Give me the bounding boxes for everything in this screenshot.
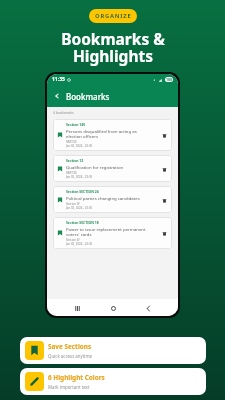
button[interactable]: Section SECTION 18	[53, 217, 172, 249]
button[interactable]: Back	[142, 302, 154, 314]
button[interactable]: 6 Highlight Colors	[20, 368, 206, 395]
staticText: Section IV	[66, 202, 80, 206]
staticText: 4 bookmarks	[53, 110, 74, 115]
staticText: Section SECTION 24	[66, 189, 99, 194]
button[interactable]: Recents	[71, 302, 83, 314]
staticText: Quick access anytime	[48, 353, 93, 359]
staticText: PART III	[66, 171, 77, 175]
button[interactable]: Delete	[160, 131, 168, 139]
staticText: Section 145	[66, 122, 86, 127]
staticText: 11:35	[52, 76, 65, 83]
staticText: Section SECTION 18	[66, 220, 99, 225]
staticText: Jan 02, 2024 - 23:35	[66, 206, 93, 210]
button[interactable]: Delete	[160, 229, 168, 237]
staticText: Persons disqualified from acting as elec…	[66, 128, 137, 139]
button[interactable]: Save Sections	[20, 337, 206, 364]
button[interactable]: Delete	[160, 196, 168, 204]
staticText: Section 12	[66, 158, 84, 163]
staticText: ORGANIZE	[95, 12, 132, 20]
staticText: 100	[166, 77, 173, 82]
staticText: Jan 02, 2024 - 23:35	[66, 175, 93, 179]
staticText: PART III	[66, 140, 77, 144]
staticText: Political parties changing candidates	[66, 195, 140, 201]
button[interactable]: Section 12	[53, 155, 172, 182]
staticText: Qualification for registration	[66, 164, 124, 170]
staticText: Bookmarks & Highlights	[61, 28, 165, 67]
staticText: Jan 02, 2024 - 23:35	[66, 144, 93, 148]
staticText: Mark important text	[48, 384, 90, 390]
staticText: Section IV	[66, 238, 80, 242]
staticText: Save Sections	[48, 342, 92, 351]
staticText: Power to issue replacement permanent vot…	[66, 226, 146, 237]
staticText: Jan 02, 2024 - 23:35	[66, 242, 93, 246]
button[interactable]: Back	[51, 90, 63, 102]
button[interactable]: Home	[107, 302, 119, 314]
button[interactable]: Delete	[160, 165, 168, 173]
button[interactable]: Section SECTION 24	[53, 186, 172, 213]
button[interactable]: ORGANIZE	[89, 9, 137, 23]
staticText: 6 Highlight Colors	[48, 373, 105, 382]
button[interactable]: Section 145	[53, 119, 172, 151]
staticText: Bookmarks	[66, 91, 110, 102]
